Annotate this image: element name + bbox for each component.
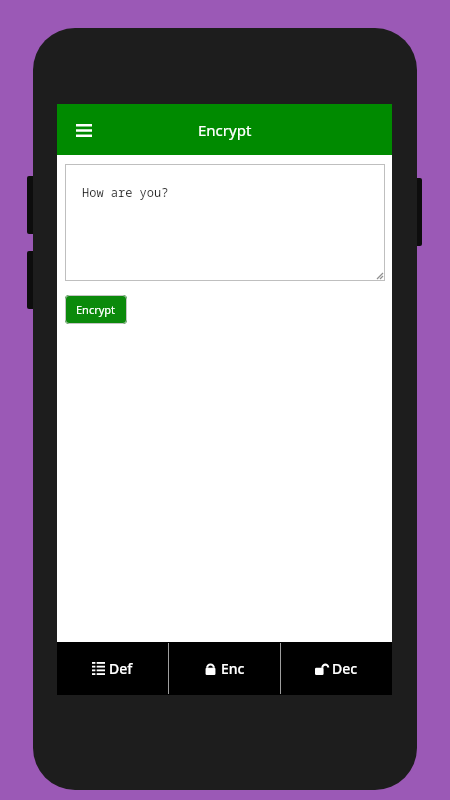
button[interactable]: How are you? <box>65 164 385 281</box>
staticText: Def <box>109 659 133 678</box>
button[interactable]: Dec <box>281 642 392 695</box>
button[interactable]: Open navigation drawer <box>69 115 99 145</box>
button[interactable]: Enc <box>169 642 280 695</box>
staticText: Encrypt <box>198 120 252 140</box>
staticText: Encrypt <box>76 302 116 317</box>
button[interactable]: Encrypt <box>65 295 127 324</box>
staticText: Dec <box>332 659 358 678</box>
staticText: How are you? <box>82 184 169 200</box>
button[interactable]: Def <box>57 642 168 695</box>
staticText: Enc <box>221 659 245 678</box>
